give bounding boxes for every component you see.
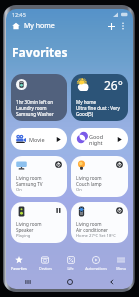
button[interactable]: Pause: [11, 202, 67, 243]
staticText: Samsung TV: [16, 181, 43, 187]
staticText: 12:45: [12, 11, 26, 18]
button[interactable]: Recent apps: [6, 275, 49, 289]
staticText: Life: [67, 266, 74, 271]
button[interactable]: Automations: [83, 252, 108, 275]
staticText: Good night: [89, 133, 104, 146]
staticText: Living room: [76, 221, 102, 227]
staticText: Playing: [16, 233, 31, 239]
staticText: Ultra fine dust : Very: [76, 105, 120, 111]
button[interactable]: Devices: [32, 252, 58, 275]
staticText: Samsung Washer: [16, 111, 54, 117]
staticText: Air conditioner: [76, 227, 108, 233]
button[interactable]: Back: [91, 275, 133, 289]
button[interactable]: 1hr 30min left on: [11, 74, 67, 121]
staticText: 26°: [104, 77, 123, 93]
staticText: Favorites: [11, 266, 27, 271]
button[interactable]: Toggle power: [71, 202, 128, 243]
staticText: My home: [76, 99, 97, 105]
staticText: Living room: [76, 175, 102, 181]
staticText: Menu: [116, 266, 126, 271]
staticText: My home: [24, 21, 55, 31]
button[interactable]: Home: [49, 275, 91, 289]
button[interactable]: Add device: [105, 20, 117, 32]
button[interactable]: 26°: [71, 74, 128, 121]
staticText: On: [76, 187, 82, 193]
staticText: Laundry room: [16, 105, 47, 111]
button[interactable]: Toggle power: [115, 206, 124, 215]
staticText: Movie: [29, 136, 45, 143]
staticText: Couch lamp: [76, 181, 102, 187]
staticText: Living room: [16, 175, 42, 181]
button[interactable]: Movie: [11, 128, 67, 150]
button[interactable]: Good night: [71, 128, 128, 150]
staticText: Devices: [39, 266, 52, 271]
button[interactable]: Toggle power: [71, 156, 128, 197]
staticText: Automations: [85, 266, 107, 271]
button[interactable]: Toggle power: [11, 156, 67, 197]
button[interactable]: Menu: [108, 252, 133, 275]
staticText: Good(5): [76, 111, 94, 117]
staticText: Speaker: [16, 227, 34, 233]
button[interactable]: Toggle power: [115, 160, 124, 169]
staticText: Living room: [16, 221, 42, 227]
staticText: 1hr 30min left on: [16, 99, 54, 105]
button[interactable]: Toggle power: [54, 160, 63, 169]
staticText: Home 27°C Set 18°C: [76, 233, 116, 239]
button[interactable]: Pause: [54, 206, 63, 215]
button[interactable]: More options: [117, 20, 129, 32]
staticText: Favorites: [12, 44, 68, 60]
staticText: On: [16, 187, 22, 193]
button[interactable]: Life: [58, 252, 83, 275]
button[interactable]: Favorites: [6, 252, 32, 275]
